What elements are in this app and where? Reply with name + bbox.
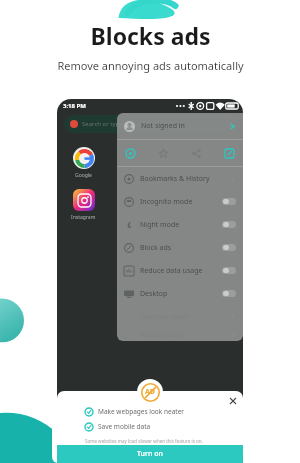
staticText: Block ads xyxy=(140,243,172,253)
button[interactable]: Night mode xyxy=(117,213,243,236)
staticText: Search or type web address xyxy=(82,120,160,128)
button[interactable]: Search or type web address xyxy=(64,115,236,133)
staticText: Night mode xyxy=(140,220,180,230)
staticText: Reduce data usage xyxy=(140,266,203,276)
button[interactable]: Toggle xyxy=(222,244,236,251)
button[interactable]: Close xyxy=(228,396,238,406)
staticText: Some websites may load slower when this … xyxy=(85,438,203,444)
staticText: Bookmarks & History xyxy=(140,174,210,184)
button[interactable]: Bookmarks & History xyxy=(117,167,243,190)
staticText: Instagram xyxy=(71,214,96,221)
button[interactable]: Add bookmark xyxy=(157,147,170,160)
staticText: 3:18 PM xyxy=(63,102,86,110)
button[interactable]: Reduce data usage xyxy=(117,259,243,282)
button[interactable]: Exit xyxy=(223,147,236,160)
staticText: Save mobile data xyxy=(98,422,151,431)
button[interactable]: Not signed in xyxy=(117,113,243,139)
button[interactable] xyxy=(73,189,95,211)
button[interactable]: Toggle xyxy=(222,267,236,274)
button[interactable]: Share xyxy=(190,147,203,160)
staticText: Not signed in xyxy=(141,121,185,131)
button[interactable]: Find on page xyxy=(117,328,243,341)
button[interactable]: Toggle xyxy=(222,198,236,205)
button[interactable]: Desktop xyxy=(117,282,243,305)
button[interactable]: Toggle xyxy=(222,290,236,297)
staticText: Remove annoying ads automatically xyxy=(57,58,244,73)
button[interactable]: Toggle xyxy=(222,221,236,228)
staticText: Turn on xyxy=(137,449,163,459)
staticText: Make webpages look neater xyxy=(98,407,184,416)
other: Open account xyxy=(229,123,236,130)
staticText: Desktop xyxy=(140,289,168,299)
button[interactable]: Incognito mode xyxy=(117,190,243,213)
staticText: Incognito mode xyxy=(140,197,193,207)
button[interactable]: Refresh xyxy=(124,147,137,160)
staticText: Blocks ads xyxy=(90,20,211,51)
button[interactable]: Turn on xyxy=(57,445,243,463)
staticText: AD xyxy=(145,387,155,397)
button[interactable] xyxy=(73,147,95,169)
staticText: Google xyxy=(75,172,92,179)
button[interactable]: Block ads xyxy=(117,236,243,259)
